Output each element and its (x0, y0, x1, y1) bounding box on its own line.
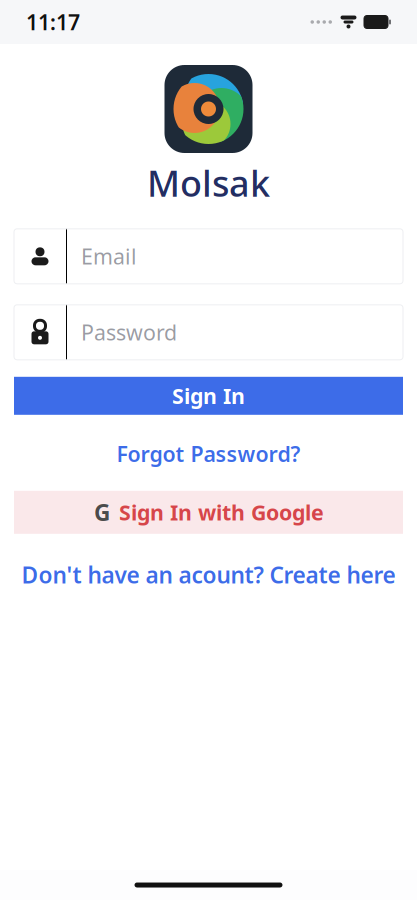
button[interactable]: Don't have an acount? Create here (14, 555, 403, 595)
staticText: Sign In with Google (119, 498, 324, 526)
button[interactable]: Forgot Password? (14, 434, 403, 474)
staticText: Don't have an acount? Create here (21, 560, 395, 590)
staticText: 11:17 (26, 8, 80, 36)
staticText: G (94, 497, 110, 527)
staticText: Password (81, 318, 177, 346)
staticText: Sign In (172, 382, 245, 410)
button[interactable]: Sign In (14, 377, 403, 415)
staticText: Molsak (147, 159, 270, 207)
staticText: Email (81, 242, 137, 270)
button[interactable]: G (14, 491, 403, 534)
staticText: Forgot Password? (116, 440, 300, 468)
